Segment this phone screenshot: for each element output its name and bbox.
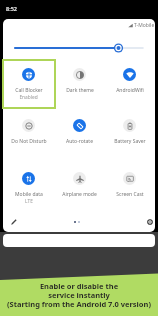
- button[interactable]: Do Not Disturb: [3, 105, 54, 150]
- button[interactable]: Edit tiles: [7, 215, 20, 228]
- button[interactable]: Auto-rotate: [54, 105, 105, 150]
- staticText: Battery Saver: [114, 138, 146, 145]
- button[interactable]: Call Blocker: [3, 54, 54, 99]
- staticText: LTE: [25, 198, 33, 203]
- staticText: Dark theme: [66, 87, 94, 94]
- staticText: AndroidWifi: [116, 87, 144, 94]
- staticText: 8:52: [6, 5, 17, 12]
- button[interactable]: Airplane mode: [54, 158, 105, 203]
- button[interactable]: Screen Cast: [104, 158, 155, 203]
- staticText: Enable or disable the service instantly …: [0, 281, 158, 310]
- button[interactable]: Dark theme: [54, 54, 105, 99]
- staticText: Enabled: [19, 94, 38, 99]
- button[interactable]: Mobile data: [3, 158, 54, 203]
- staticText: Airplane mode: [62, 191, 97, 198]
- staticText: Mobile data: [15, 191, 43, 198]
- staticText: Screen Cast: [116, 191, 144, 198]
- staticText: Auto-rotate: [66, 138, 93, 145]
- staticText: Do Not Disturb: [11, 138, 47, 145]
- button[interactable]: AndroidWifi: [104, 54, 155, 99]
- button[interactable]: Settings: [143, 215, 155, 228]
- staticText: T-Mobile: [134, 22, 155, 29]
- button[interactable]: Battery Saver: [104, 105, 155, 150]
- staticText: Call Blocker: [15, 87, 43, 94]
